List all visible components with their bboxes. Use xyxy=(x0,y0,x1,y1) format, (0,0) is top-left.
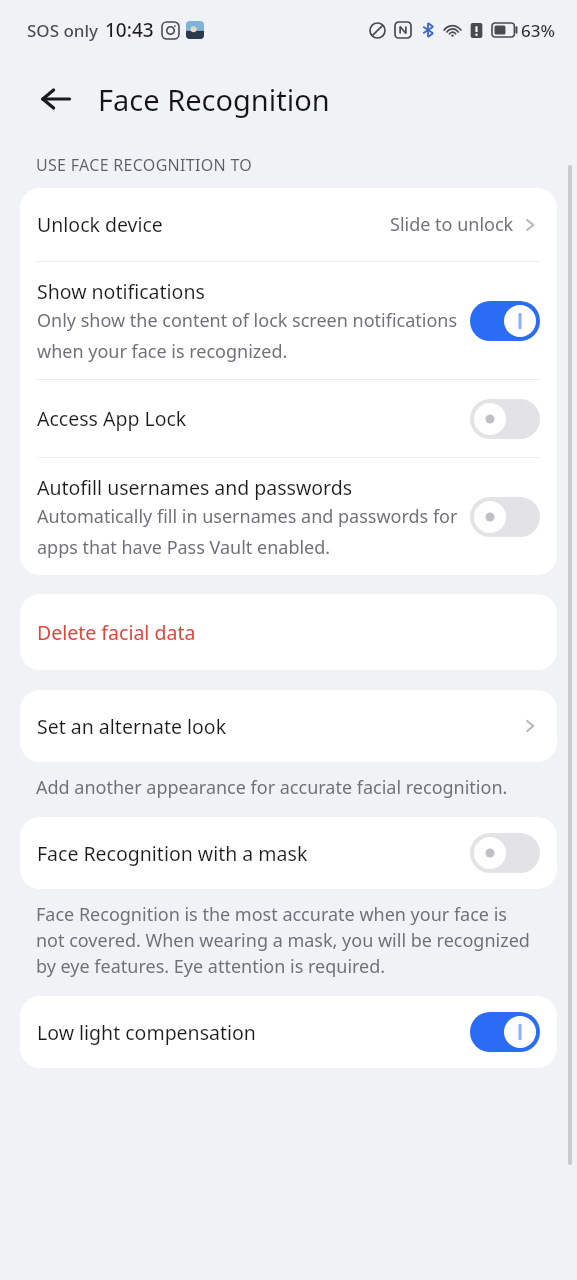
staticText: Add another appearance for accurate faci… xyxy=(36,775,508,800)
button[interactable]: Unlock device xyxy=(20,188,557,261)
staticText: Set an alternate look xyxy=(37,713,520,740)
staticText: Face Recognition is the most accurate wh… xyxy=(36,902,537,979)
staticText: Access App Lock xyxy=(37,405,187,432)
button[interactable]: Delete facial data xyxy=(20,594,557,670)
button[interactable]: Show notifications xyxy=(20,262,557,379)
staticText: 63% xyxy=(521,19,555,42)
staticText: Face Recognition with a mask xyxy=(37,840,470,867)
staticText: Autofill usernames and passwords xyxy=(37,474,353,501)
staticText: Face Recognition xyxy=(98,80,330,119)
staticText: Slide to unlock xyxy=(390,212,514,237)
staticText: 10:43 xyxy=(105,17,154,43)
staticText: Only show the content of lock screen not… xyxy=(37,308,458,363)
button[interactable]: Toggle off xyxy=(470,497,540,537)
button[interactable]: Toggle on xyxy=(470,301,540,341)
staticText: Low light compensation xyxy=(37,1019,470,1046)
button[interactable]: Face Recognition with a mask xyxy=(20,817,557,889)
button[interactable]: Toggle off xyxy=(470,833,540,873)
button[interactable]: Set an alternate look xyxy=(20,690,557,762)
button[interactable]: Toggle off xyxy=(470,399,540,439)
button[interactable]: Low light compensation xyxy=(20,996,557,1068)
staticText: SOS only xyxy=(27,19,99,42)
staticText: Unlock device xyxy=(37,211,390,238)
staticText: Delete facial data xyxy=(37,619,196,646)
staticText: USE FACE RECOGNITION TO xyxy=(36,154,253,176)
button[interactable]: Autofill usernames and passwords xyxy=(20,458,557,575)
staticText: Show notifications xyxy=(37,278,205,305)
button[interactable]: Back xyxy=(36,79,76,119)
staticText: Automatically fill in usernames and pass… xyxy=(37,504,458,559)
button[interactable]: Access App Lock xyxy=(20,380,557,457)
button[interactable]: Toggle on xyxy=(470,1012,540,1052)
